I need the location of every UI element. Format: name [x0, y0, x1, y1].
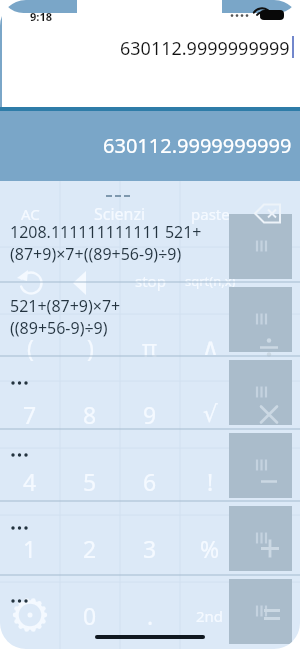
button[interactable]: ( [0, 314, 60, 381]
staticText: 630112.9999999999 [103, 132, 292, 159]
button[interactable]: Equals [229, 579, 292, 644]
button[interactable]: AC [0, 180, 60, 247]
staticText: 7 [23, 399, 37, 430]
staticText: (87+9)×7+((89+56-9)÷9) [10, 243, 182, 265]
staticText: 2nd [196, 606, 224, 626]
button[interactable]: 2 [60, 515, 120, 582]
staticText: 8 [83, 399, 97, 430]
staticText: ) [87, 332, 94, 363]
button[interactable]: Divide [229, 287, 292, 352]
button[interactable]: Scienzi [60, 180, 120, 247]
button[interactable] [60, 247, 120, 314]
staticText: 5 [83, 466, 97, 497]
button[interactable]: 5 [60, 448, 120, 515]
button[interactable]: stop [120, 247, 180, 314]
button[interactable] [0, 582, 60, 649]
button[interactable]: % [180, 515, 240, 582]
staticText: . [147, 600, 154, 631]
staticText: √ [203, 401, 218, 428]
staticText: 521+(87+9)×7+ [10, 295, 121, 317]
button[interactable]: ∧ [180, 314, 240, 381]
staticText: 1 [23, 533, 37, 564]
staticText: 6 [143, 466, 157, 497]
staticText: 9:18 [30, 9, 52, 24]
staticText: 0 [83, 600, 97, 631]
staticText: ((89+56-9)÷9) [10, 317, 108, 339]
staticText: AC [21, 204, 40, 224]
staticText: ! [207, 466, 214, 497]
button[interactable]: . [120, 582, 180, 649]
button[interactable]: π [120, 314, 180, 381]
staticText: % [200, 533, 220, 564]
button[interactable]: 2nd [180, 582, 240, 649]
staticText: 1208.111111111111 521+ [10, 221, 202, 243]
staticText: ∧ [202, 334, 219, 361]
button[interactable]: √ [180, 381, 240, 448]
button[interactable]: Subtract [229, 433, 292, 498]
button[interactable]: Multiply [229, 360, 292, 425]
button[interactable]: ) [60, 314, 120, 381]
staticText: stop [135, 271, 166, 291]
staticText: 3 [143, 533, 157, 564]
staticText: 4 [23, 466, 37, 497]
staticText: 9 [143, 399, 157, 430]
button[interactable]: 0 [60, 582, 120, 649]
staticText: ( [27, 332, 34, 363]
staticText: 2 [83, 533, 97, 564]
button[interactable]: Backspace [229, 214, 292, 279]
staticText: sqrt(n,x) [185, 272, 236, 290]
button[interactable]: 7 [0, 381, 60, 448]
staticText: paste [191, 204, 230, 224]
button[interactable]: Add [229, 506, 292, 571]
button[interactable] [0, 247, 60, 314]
button[interactable]: 9 [120, 381, 180, 448]
button[interactable]: 8 [60, 381, 120, 448]
button[interactable]: paste [180, 180, 240, 247]
button[interactable]: 4 [0, 448, 60, 515]
button[interactable]: 3 [120, 515, 180, 582]
staticText: π [142, 332, 158, 363]
button[interactable] [120, 180, 180, 247]
button[interactable]: 6 [120, 448, 180, 515]
staticText: 630112.9999999999 [120, 36, 290, 61]
staticText: Scienzi [94, 203, 146, 225]
button[interactable]: sqrt(n,x) [180, 247, 240, 314]
button[interactable]: ! [180, 448, 240, 515]
button[interactable]: 1 [0, 515, 60, 582]
